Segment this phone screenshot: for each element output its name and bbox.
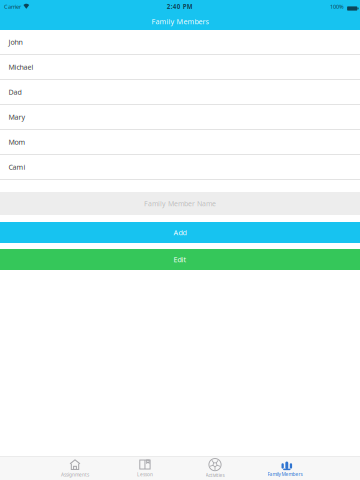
staticText: Activities <box>205 472 224 478</box>
button[interactable]: Michael <box>0 55 360 80</box>
staticText: Edit <box>173 255 186 264</box>
staticText: Add <box>173 228 186 237</box>
staticText: Family Members <box>267 471 302 477</box>
button[interactable]: Mary <box>0 105 360 130</box>
button[interactable]: Lesson <box>110 457 180 480</box>
staticText: Michael <box>8 62 33 72</box>
staticText: 2:40 PM <box>167 2 193 11</box>
button[interactable]: Family Members <box>250 457 320 480</box>
staticText: Mary <box>8 112 25 122</box>
staticText: Assignments <box>61 471 89 478</box>
staticText: 100% <box>330 3 344 10</box>
button[interactable]: Cami <box>0 155 360 180</box>
button[interactable]: Assignments <box>40 457 110 480</box>
staticText: Mom <box>8 137 25 147</box>
staticText: Carrier <box>4 3 21 10</box>
staticText: Family Member Name <box>144 199 216 208</box>
staticText: John <box>8 37 22 47</box>
button[interactable]: Activities <box>180 457 250 480</box>
staticText: Family Members <box>151 17 208 26</box>
button[interactable]: Family Member Name <box>0 192 360 215</box>
button[interactable]: Add <box>0 222 360 243</box>
staticText: Lesson <box>137 471 153 478</box>
button[interactable]: Mom <box>0 130 360 155</box>
button[interactable]: Dad <box>0 80 360 105</box>
staticText: Dad <box>8 87 21 97</box>
button[interactable]: Edit <box>0 249 360 270</box>
staticText: Cami <box>8 162 25 172</box>
button[interactable]: John <box>0 30 360 55</box>
